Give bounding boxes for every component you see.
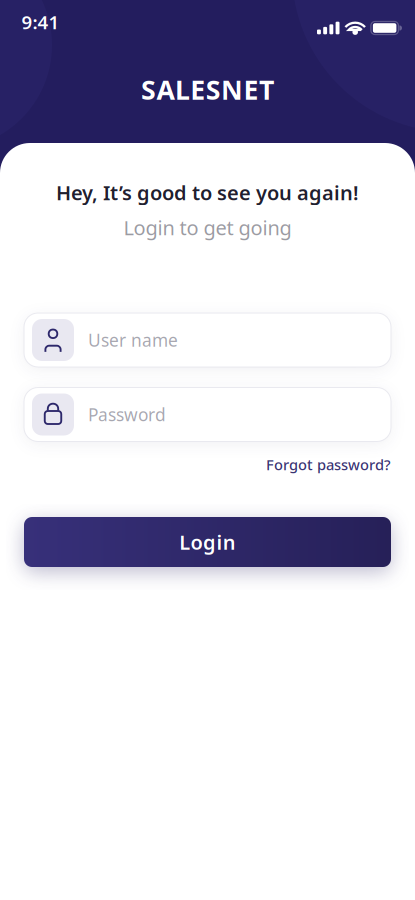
staticText: Login to get going xyxy=(123,214,291,241)
staticText: Hey, It’s good to see you again! xyxy=(56,179,359,206)
button[interactable]: User name xyxy=(24,313,391,367)
button[interactable]: Login xyxy=(24,517,391,567)
button[interactable]: Password xyxy=(24,387,391,441)
staticText: SALESNET xyxy=(141,72,274,107)
staticText: 9:41 xyxy=(21,10,59,34)
staticText: User name xyxy=(88,328,178,351)
button[interactable]: Forgot password? xyxy=(266,455,391,474)
staticText: Forgot password? xyxy=(266,455,391,474)
staticText: Login xyxy=(179,529,236,555)
staticText: Password xyxy=(88,403,166,426)
